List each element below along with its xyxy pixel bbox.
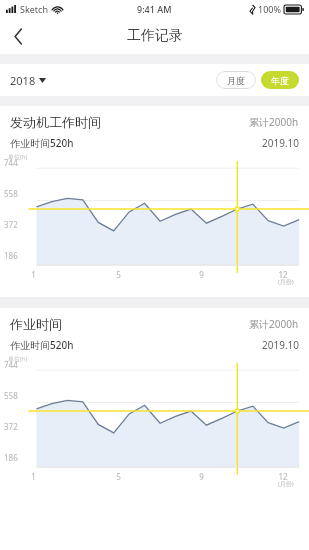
- staticText: 9:41 AM: [137, 3, 172, 15]
- staticText: 9: [199, 269, 204, 280]
- staticText: 2018: [10, 73, 36, 88]
- staticText: 2019.10: [262, 136, 299, 150]
- staticText: 186: [4, 250, 18, 261]
- staticText: 作业时间520h: [10, 136, 74, 150]
- button[interactable]: 发动机工作时间: [0, 106, 309, 297]
- staticText: 单位(h): [8, 153, 28, 161]
- staticText: 作业时间: [10, 316, 62, 332]
- staticText: 单位(h): [8, 355, 28, 363]
- staticText: 5: [116, 471, 121, 482]
- staticText: 累计2000h: [249, 115, 299, 129]
- staticText: 作业时间520h: [10, 338, 74, 352]
- button[interactable]: 月度: [216, 71, 256, 89]
- staticText: 工作记录: [127, 27, 183, 45]
- staticText: Sketch: [20, 3, 48, 15]
- staticText: 2019.10: [262, 338, 299, 352]
- button[interactable]: 作业时间: [0, 308, 309, 499]
- staticText: 累计2000h: [249, 317, 299, 331]
- staticText: 9: [199, 471, 204, 482]
- staticText: 1: [31, 471, 36, 482]
- button[interactable]: 2018: [10, 73, 46, 88]
- staticText: 1: [31, 269, 36, 280]
- staticText: 372: [4, 421, 18, 432]
- staticText: 744: [4, 359, 18, 370]
- staticText: 发动机工作时间: [10, 114, 101, 130]
- staticText: (月份): [278, 480, 294, 488]
- button[interactable]: Back: [0, 18, 36, 54]
- staticText: 558: [4, 390, 18, 401]
- staticText: 12: [278, 269, 288, 280]
- staticText: (月份): [278, 278, 294, 286]
- staticText: 月度: [227, 75, 245, 86]
- staticText: 100%: [258, 3, 281, 15]
- staticText: 744: [4, 157, 18, 168]
- staticText: 372: [4, 219, 18, 230]
- staticText: 558: [4, 188, 18, 199]
- staticText: 年度: [271, 75, 289, 86]
- staticText: 12: [278, 471, 288, 482]
- staticText: 5: [116, 269, 121, 280]
- staticText: 186: [4, 452, 18, 463]
- button[interactable]: 年度: [261, 71, 299, 89]
